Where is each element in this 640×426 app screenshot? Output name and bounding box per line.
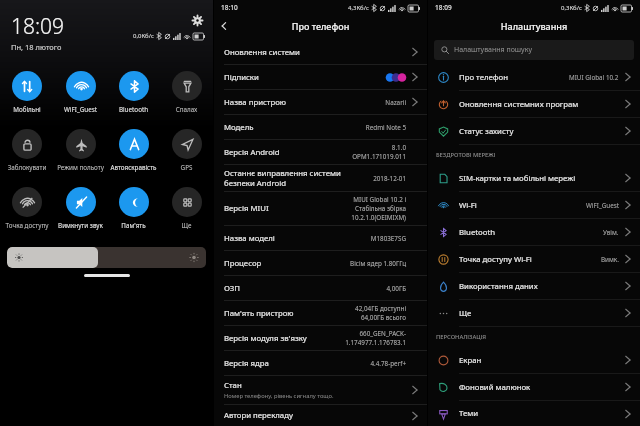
button[interactable]: ОЗП [214, 276, 427, 301]
staticText: Увім. [603, 228, 619, 237]
button[interactable]: Bluetooth [107, 68, 160, 117]
staticText: 64,00ГБ всього [360, 313, 406, 322]
staticText: Процесор [224, 258, 262, 269]
staticText: Автояскравість [107, 163, 160, 172]
button[interactable]: Оновлення системи [214, 40, 427, 65]
button[interactable]: Settings [189, 12, 205, 28]
button[interactable]: Процесор [214, 251, 427, 276]
staticText: SIM-картки та мобільні мережі [459, 173, 622, 184]
staticText: M1803E7SG [370, 234, 406, 243]
staticText: Фоновий малюнок [459, 382, 622, 393]
button[interactable]: Версія Android [214, 140, 427, 165]
button[interactable]: Back [214, 16, 234, 36]
button[interactable]: Версія MIUI [214, 192, 427, 226]
button[interactable]: Назва моделі [214, 226, 427, 251]
button[interactable]: Підписки [214, 65, 427, 90]
staticText: Версія модуля зв'язку [224, 333, 307, 344]
button[interactable]: Wi-Fi [428, 192, 640, 219]
staticText: Пам'ять пристрою [224, 308, 294, 319]
staticText: Назва пристрою [224, 97, 287, 108]
staticText: Мобільні [0, 105, 54, 114]
staticText: Bluetooth [459, 227, 603, 238]
staticText: БЕЗДРОТОВІ МЕРЕЖІ [436, 151, 496, 159]
staticText: Спалах [160, 105, 213, 114]
button[interactable]: WiFI_Guest [54, 68, 107, 117]
staticText: Nazarii [385, 98, 406, 107]
staticText: 4,00ГБ [386, 284, 406, 293]
staticText: 0,3Кб/с [561, 4, 582, 12]
staticText: Вимк. [601, 255, 619, 264]
staticText: Точка доступу [0, 221, 54, 230]
button[interactable]: Про телефон [428, 64, 640, 91]
staticText: Налаштування пошуку [454, 45, 532, 55]
staticText: WiFI_Guest [54, 105, 107, 114]
staticText: Стабільна збірка [355, 204, 406, 213]
button[interactable]: Теми [428, 401, 640, 426]
staticText: 4.4.78-perf+ [370, 359, 406, 368]
button[interactable]: Режим польоту [54, 126, 107, 175]
button[interactable]: Точка доступу Wi-Fi [428, 246, 640, 273]
staticText: Вимкнути звук [54, 221, 107, 230]
button[interactable]: Точка доступу [0, 184, 54, 233]
staticText: Назва моделі [224, 233, 275, 244]
button[interactable]: SIM-картки та мобільні мережі [428, 165, 640, 192]
staticText: Версія MIUI [224, 203, 269, 214]
button[interactable]: Заблокувати [0, 126, 54, 175]
button[interactable]: Мобільні [0, 68, 54, 117]
staticText: Пн, 18 лютого [11, 42, 62, 52]
button[interactable]: Автояскравість [107, 126, 160, 175]
staticText: 18:09 [11, 12, 65, 41]
button[interactable]: Ще [160, 184, 213, 233]
staticText: Останнє виправлення системи безпеки Andr… [224, 168, 341, 188]
staticText: Використання даних [459, 281, 622, 292]
button[interactable]: Версія модуля зв'язку [214, 326, 427, 351]
button[interactable]: Оновлення системних програм [428, 91, 640, 118]
button[interactable]: Модель [214, 115, 427, 140]
staticText: Ще [160, 221, 213, 230]
button[interactable]: Автори перекладу [214, 405, 427, 426]
staticText: 18:09 [435, 3, 452, 12]
staticText: GPS [160, 163, 213, 172]
button[interactable]: Налаштування пошуку [434, 40, 634, 60]
staticText: Автори перекладу [224, 410, 293, 421]
button[interactable]: Ще [428, 300, 640, 327]
staticText: Пам'ять [107, 221, 160, 230]
staticText: Вісім ядер 1.80ГГц [350, 259, 406, 268]
staticText: Оновлення системи [224, 47, 300, 58]
button[interactable]: Останнє виправлення системи безпеки Andr… [214, 165, 427, 192]
staticText: Режим польоту [54, 163, 107, 172]
staticText: 0,0Кб/с [133, 32, 154, 40]
staticText: 42,04ГБ доступні [355, 304, 406, 313]
button[interactable]: Версія ядра [214, 351, 427, 376]
button[interactable] [7, 247, 206, 268]
button[interactable]: GPS [160, 126, 213, 175]
staticText: Оновлення системних програм [459, 99, 622, 110]
staticText: Заблокувати [0, 163, 54, 172]
staticText: 4,3Кб/с [348, 4, 369, 12]
button[interactable]: Пам'ять [107, 184, 160, 233]
staticText: 8.1.0 [391, 143, 406, 152]
staticText: Точка доступу Wi-Fi [459, 254, 601, 265]
button[interactable]: Спалах [160, 68, 213, 117]
staticText: ПЕРСОНАЛІЗАЦІЯ [436, 333, 487, 341]
staticText: Версія Android [224, 147, 280, 158]
staticText: MIUI Global 10.2 [569, 73, 619, 82]
button[interactable]: Використання даних [428, 273, 640, 300]
button[interactable]: Вимкнути звук [54, 184, 107, 233]
staticText: 18:10 [221, 3, 238, 12]
staticText: Теми [459, 408, 622, 419]
staticText: Bluetooth [107, 105, 160, 114]
button[interactable]: Екран [428, 347, 640, 374]
button[interactable]: Пам'ять пристрою [214, 301, 427, 326]
button[interactable]: Фоновий малюнок [428, 374, 640, 401]
button[interactable]: Статус захисту [428, 118, 640, 145]
button[interactable]: Назва пристрою [214, 90, 427, 115]
button[interactable]: Стан [214, 376, 427, 405]
staticText: Ще [459, 308, 622, 319]
staticText: ОЗП [224, 283, 241, 294]
button[interactable]: Bluetooth [428, 219, 640, 246]
staticText: MIUI Global 10.2 і [353, 195, 406, 204]
staticText: Версія ядра [224, 358, 269, 369]
staticText: OPM1.171019.011 [352, 152, 406, 161]
staticText: Стан [224, 380, 242, 391]
